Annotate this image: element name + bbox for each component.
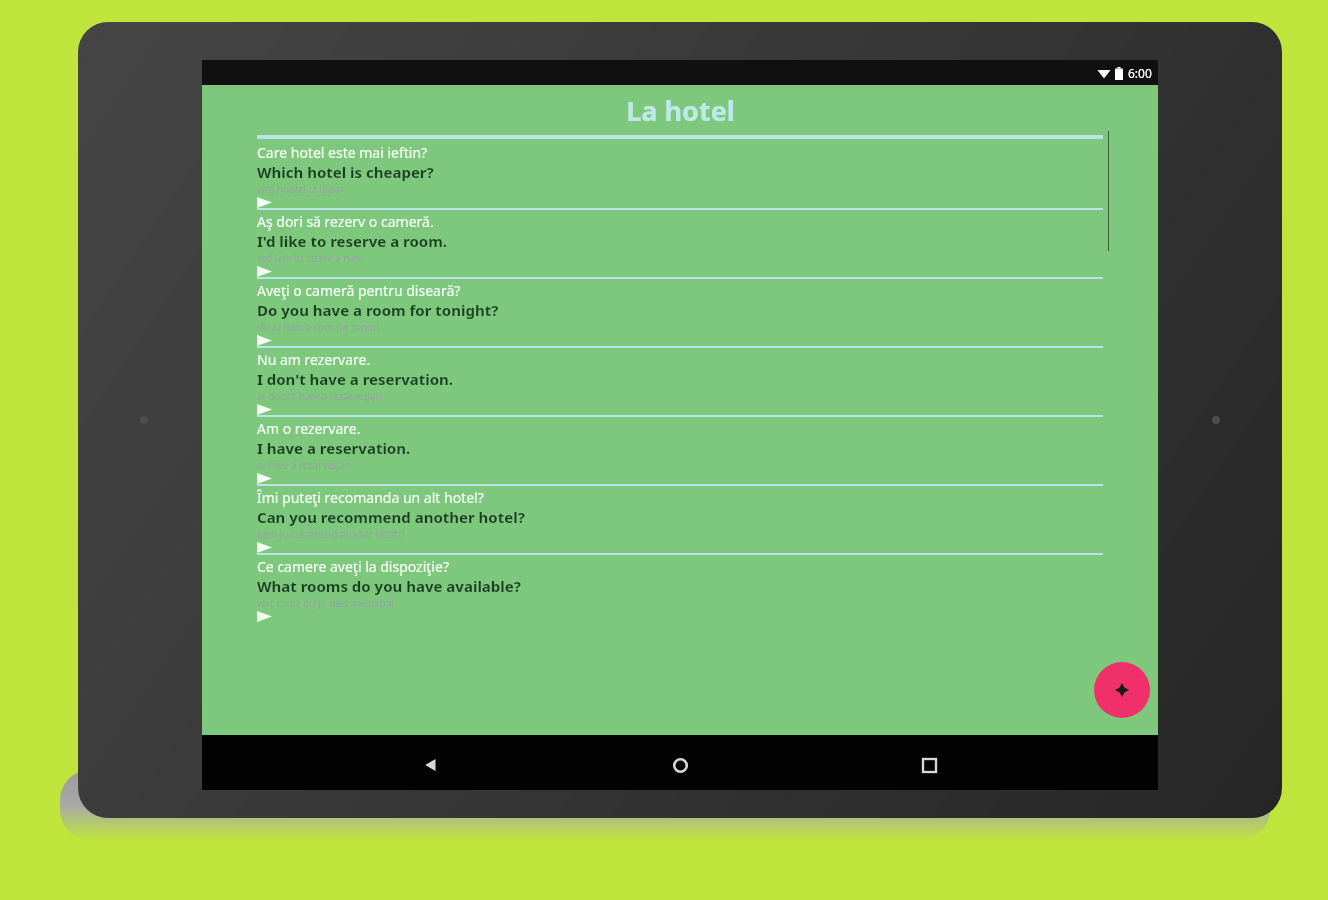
staticText: Can you recommend another hotel? xyxy=(257,507,525,527)
staticText: kæn ju rɛkəmɛnd ənʌðər hoʊtɛl xyxy=(257,527,405,541)
staticText: Aş dori să rezerv o cameră. xyxy=(257,212,434,231)
staticText: aɪd laɪk tu rɪzɜrv ə rum xyxy=(257,251,363,265)
staticText: I'd like to reserve a room. xyxy=(257,231,448,251)
staticText: wʌt rumz du ju hæv əveɪləbəl xyxy=(257,596,394,610)
button[interactable]: Recent apps xyxy=(909,745,949,785)
button[interactable]: Aveţi o cameră pentru diseară? xyxy=(202,277,1158,346)
staticText: 6:00 xyxy=(1128,65,1152,81)
button[interactable]: Back xyxy=(411,745,451,785)
staticText: Am o rezervare. xyxy=(257,419,361,438)
button[interactable]: Play audio xyxy=(257,266,287,277)
staticText: Îmi puteţi recomanda un alt hotel? xyxy=(257,488,484,507)
staticText: What rooms do you have available? xyxy=(257,576,521,596)
staticText: I don't have a reservation. xyxy=(257,369,454,389)
button[interactable]: Care hotel este mai ieftin? xyxy=(202,139,1158,208)
staticText: aɪ hæv ə rɛzərveɪʃən xyxy=(257,458,351,472)
staticText: Which hotel is cheaper? xyxy=(257,162,434,182)
button[interactable]: Ce camere aveţi la dispoziţie? xyxy=(202,553,1158,622)
button[interactable]: Îmi puteţi recomanda un alt hotel? xyxy=(202,484,1158,553)
staticText: Care hotel este mai ieftin? xyxy=(257,143,428,162)
staticText: Nu am rezervare. xyxy=(257,350,371,369)
staticText: Ce camere aveţi la dispoziţie? xyxy=(257,557,449,576)
staticText: La hotel xyxy=(626,92,735,129)
staticText: wɪtʃ hoʊtɛl ɪz tʃipər xyxy=(257,182,344,196)
button[interactable]: Aş dori să rezerv o cameră. xyxy=(202,208,1158,277)
staticText: Aveţi o cameră pentru diseară? xyxy=(257,281,461,300)
staticText: I have a reservation. xyxy=(257,438,411,458)
button[interactable]: Play audio xyxy=(257,404,287,415)
button[interactable]: Add phrase xyxy=(1094,662,1150,718)
staticText: du ju hæv ə rum fər tənaɪt xyxy=(257,320,380,334)
button[interactable]: Play audio xyxy=(257,473,287,484)
staticText: aɪ doʊnt hæv ə rɛzərveɪʃən xyxy=(257,389,382,403)
staticText: Do you have a room for tonight? xyxy=(257,300,499,320)
button[interactable]: Play audio xyxy=(257,542,287,553)
button[interactable]: Play audio xyxy=(257,611,287,622)
button[interactable]: Am o rezervare. xyxy=(202,415,1158,484)
button[interactable]: Home xyxy=(660,745,700,785)
button[interactable]: Play audio xyxy=(257,335,287,346)
button[interactable]: Play audio xyxy=(257,197,287,208)
button[interactable]: Nu am rezervare. xyxy=(202,346,1158,415)
